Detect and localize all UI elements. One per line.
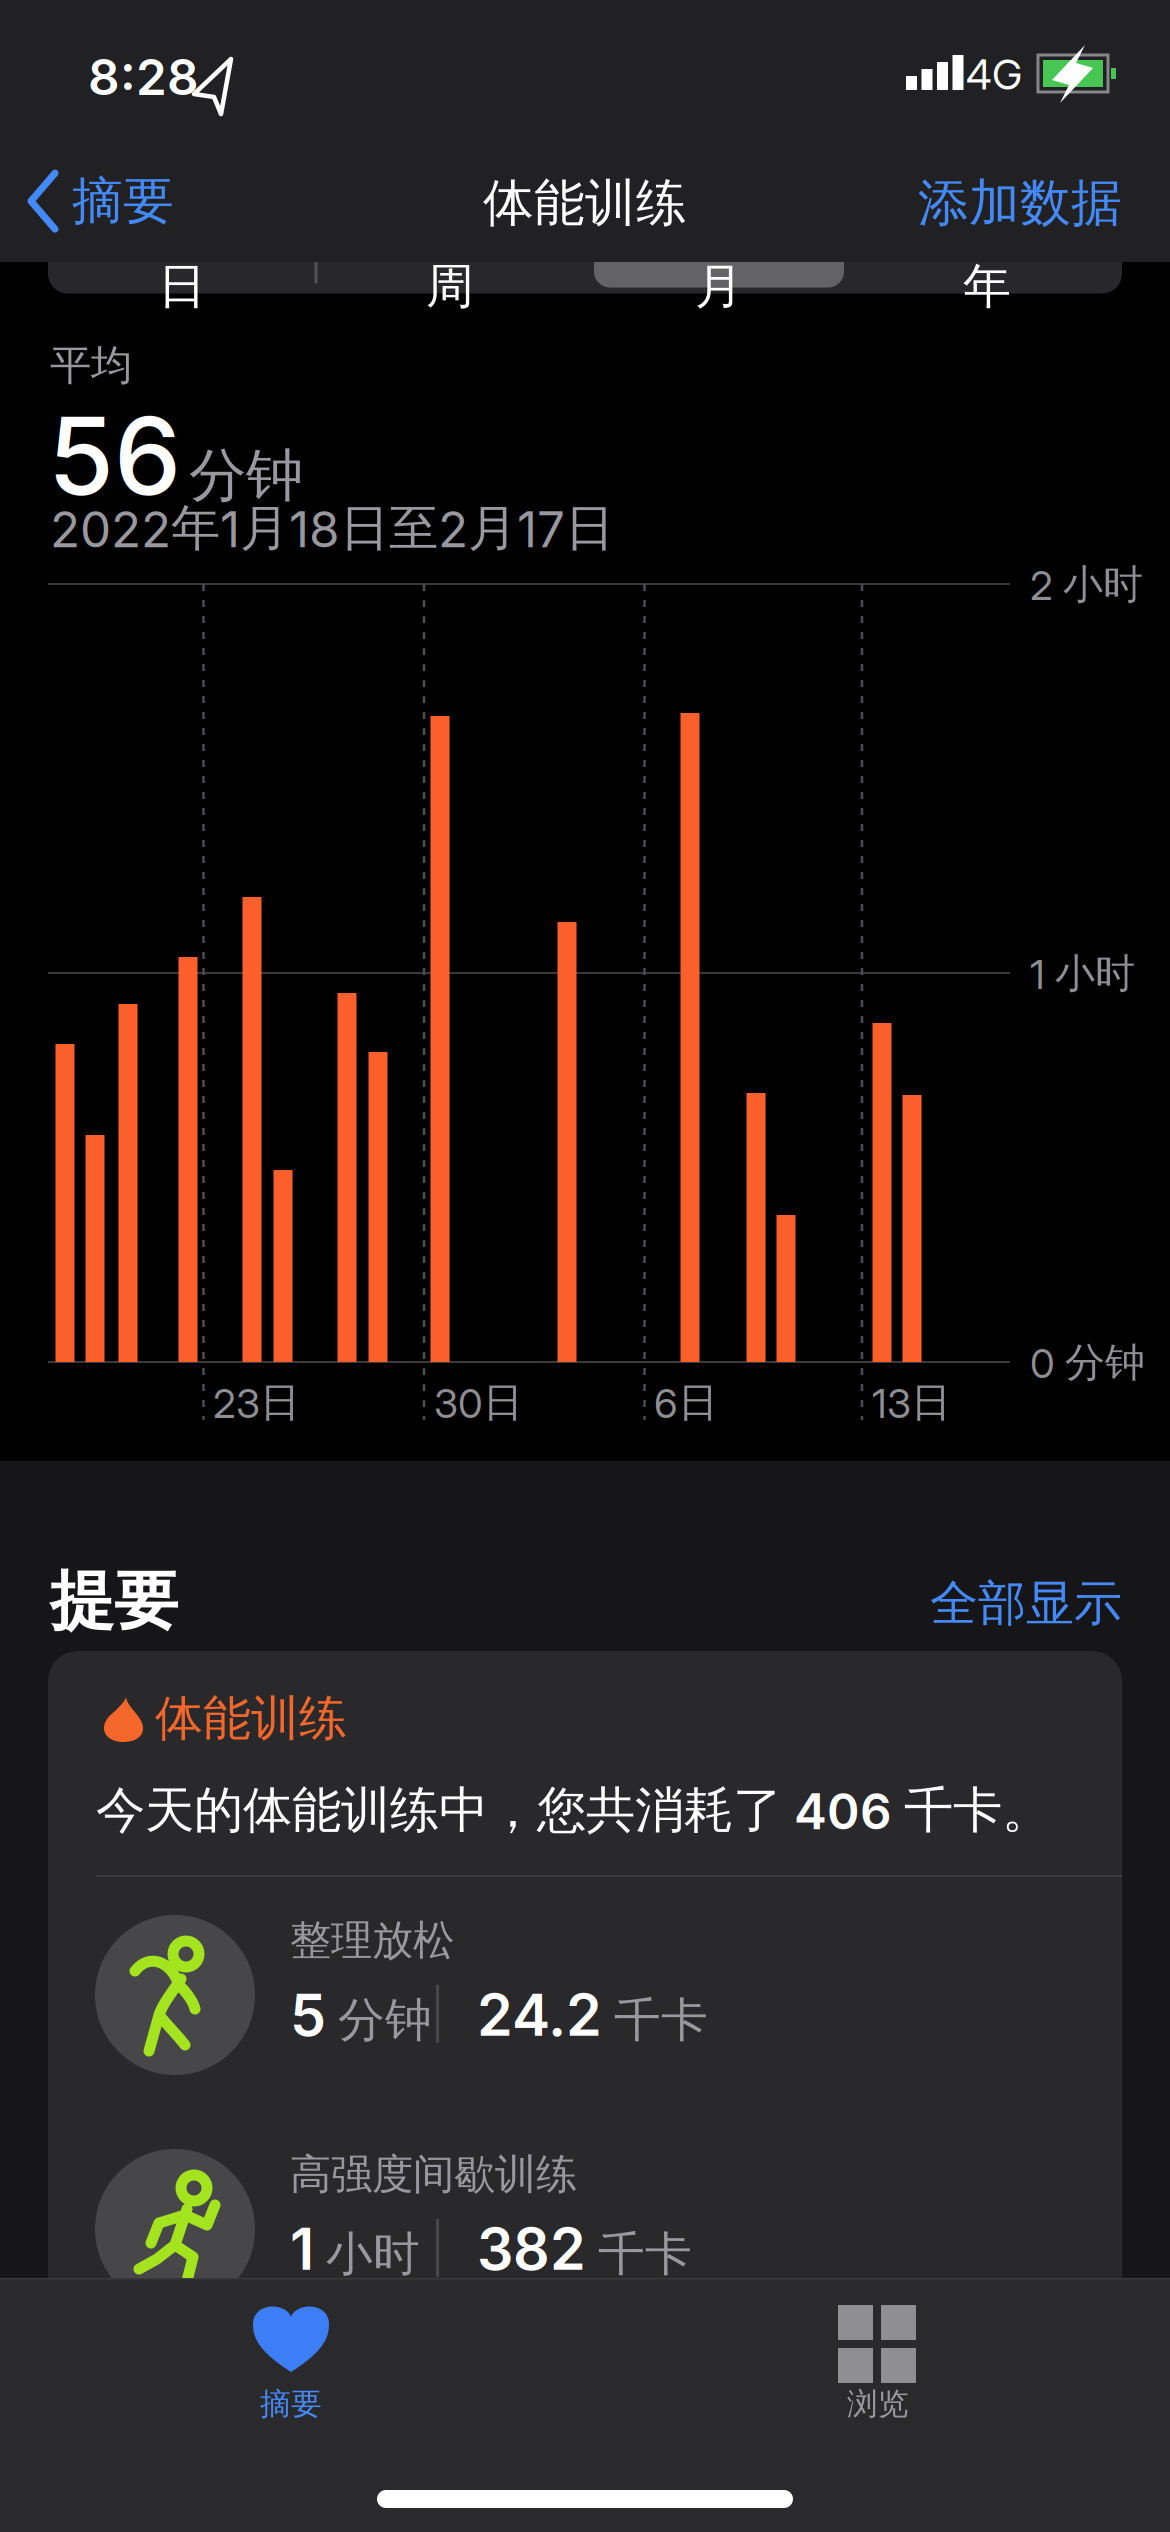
button[interactable]: 添加数据 (918, 172, 1122, 234)
staticText: 30日 (434, 1378, 523, 1427)
staticText: 千卡 (614, 1991, 708, 2049)
staticText: 分钟 (189, 440, 303, 511)
button[interactable]: 月 (585, 240, 853, 293)
staticText: 382 (477, 2215, 586, 2283)
staticText: 体能训练 (155, 1689, 347, 1748)
staticText: 24.2 (477, 1981, 602, 2049)
staticText: 6日 (654, 1378, 718, 1427)
staticText: 千卡 (598, 2225, 692, 2283)
button[interactable]: 体能训练 (48, 1651, 1122, 2311)
staticText: 年 (963, 257, 1011, 316)
staticText: 4G (966, 50, 1022, 99)
staticText: 23日 (213, 1378, 300, 1427)
staticText: 8:28 (88, 48, 199, 106)
button[interactable]: 年 (853, 240, 1121, 293)
staticText: 小时 (326, 2225, 420, 2283)
staticText: 今天的体能训练中，您共消耗了 406 千卡。 (96, 1780, 1051, 1841)
staticText: 2022年1月18日至2月17日 (50, 498, 614, 559)
staticText: 13日 (872, 1378, 951, 1427)
staticText: 摘要 (260, 2385, 322, 2423)
button[interactable]: 浏览 (585, 2278, 1170, 2532)
staticText: 提要 (50, 1562, 178, 1641)
staticText: 0 分钟 (1030, 1338, 1145, 1387)
staticText: 56 (48, 393, 181, 519)
staticText: 平均 (50, 340, 132, 391)
button[interactable]: 日 (48, 240, 316, 293)
button[interactable]: 摘要 (0, 2278, 585, 2532)
staticText: 1 (290, 2215, 314, 2283)
staticText: 周 (426, 257, 474, 316)
button[interactable]: 全部显示 (930, 1574, 1122, 1633)
staticText: 分钟 (338, 1991, 432, 2049)
button[interactable]: 周 (316, 240, 584, 293)
staticText: 摘要 (72, 170, 174, 232)
staticText: 浏览 (847, 2385, 909, 2423)
staticText: 5 (290, 1981, 326, 2049)
staticText: 整理放松 (290, 1915, 454, 1966)
staticText: 1 小时 (1030, 949, 1135, 998)
staticText: 2 小时 (1030, 560, 1143, 609)
staticText: 日 (158, 257, 206, 316)
staticText: 添加数据 (918, 172, 1122, 234)
button[interactable]: 摘要 (29, 170, 174, 232)
staticText: 体能训练 (483, 172, 687, 234)
staticText: 全部显示 (930, 1574, 1122, 1633)
staticText: 月 (695, 257, 743, 316)
staticText: 高强度间歇训练 (290, 2149, 577, 2200)
